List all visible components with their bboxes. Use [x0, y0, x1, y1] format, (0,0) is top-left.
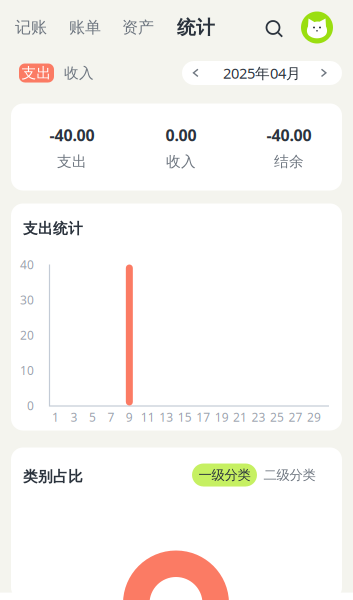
staticText: 17	[196, 409, 210, 425]
staticText: 记账	[15, 18, 47, 37]
button[interactable]: Next month	[310, 61, 338, 85]
staticText: 支出	[21, 64, 51, 82]
staticText: -40.00	[49, 124, 94, 146]
button[interactable]: 收入	[64, 64, 94, 82]
staticText: 15	[178, 409, 192, 425]
button[interactable]: Profile	[301, 11, 333, 43]
button[interactable]: 支出	[19, 63, 54, 82]
button[interactable]: 账单	[69, 12, 101, 42]
staticText: 3	[70, 409, 77, 425]
staticText: 结余	[274, 152, 304, 170]
staticText: 2025年04月	[223, 63, 301, 83]
staticText: 二级分类	[263, 467, 315, 483]
staticText: 20	[20, 327, 34, 343]
staticText: 0.00	[165, 124, 196, 146]
staticText: 5	[89, 409, 96, 425]
staticText: 29	[307, 409, 321, 425]
staticText: 收入	[64, 64, 94, 82]
staticText: 资产	[122, 18, 154, 37]
staticText: 25	[270, 409, 284, 425]
staticText: 9	[126, 409, 133, 425]
button[interactable]: 二级分类	[257, 463, 322, 486]
staticText: 支出	[57, 152, 87, 170]
staticText: 13	[159, 409, 173, 425]
staticText: 10	[20, 362, 34, 378]
button[interactable]: 记账	[15, 12, 47, 42]
staticText: 统计	[177, 16, 215, 39]
staticText: 23	[252, 409, 266, 425]
staticText: 30	[20, 292, 34, 308]
staticText: 账单	[69, 18, 101, 37]
staticText: 一级分类	[198, 467, 250, 483]
staticText: 27	[288, 409, 302, 425]
staticText: 支出统计	[23, 219, 83, 237]
button[interactable]: 一级分类	[192, 463, 257, 486]
button[interactable]: 统计	[177, 12, 215, 42]
staticText: 收入	[166, 152, 196, 170]
staticText: 19	[215, 409, 229, 425]
staticText: 11	[141, 409, 155, 425]
staticText: 1	[52, 409, 59, 425]
button[interactable]: 资产	[122, 12, 154, 42]
staticText: 40	[20, 256, 34, 272]
staticText: -40.00	[266, 124, 311, 146]
staticText: 21	[233, 409, 247, 425]
button[interactable]: Search	[263, 15, 287, 39]
staticText: 0	[27, 397, 34, 413]
button[interactable]: Previous month	[182, 61, 210, 85]
staticText: 7	[107, 409, 114, 425]
staticText: 类别占比	[23, 467, 83, 485]
